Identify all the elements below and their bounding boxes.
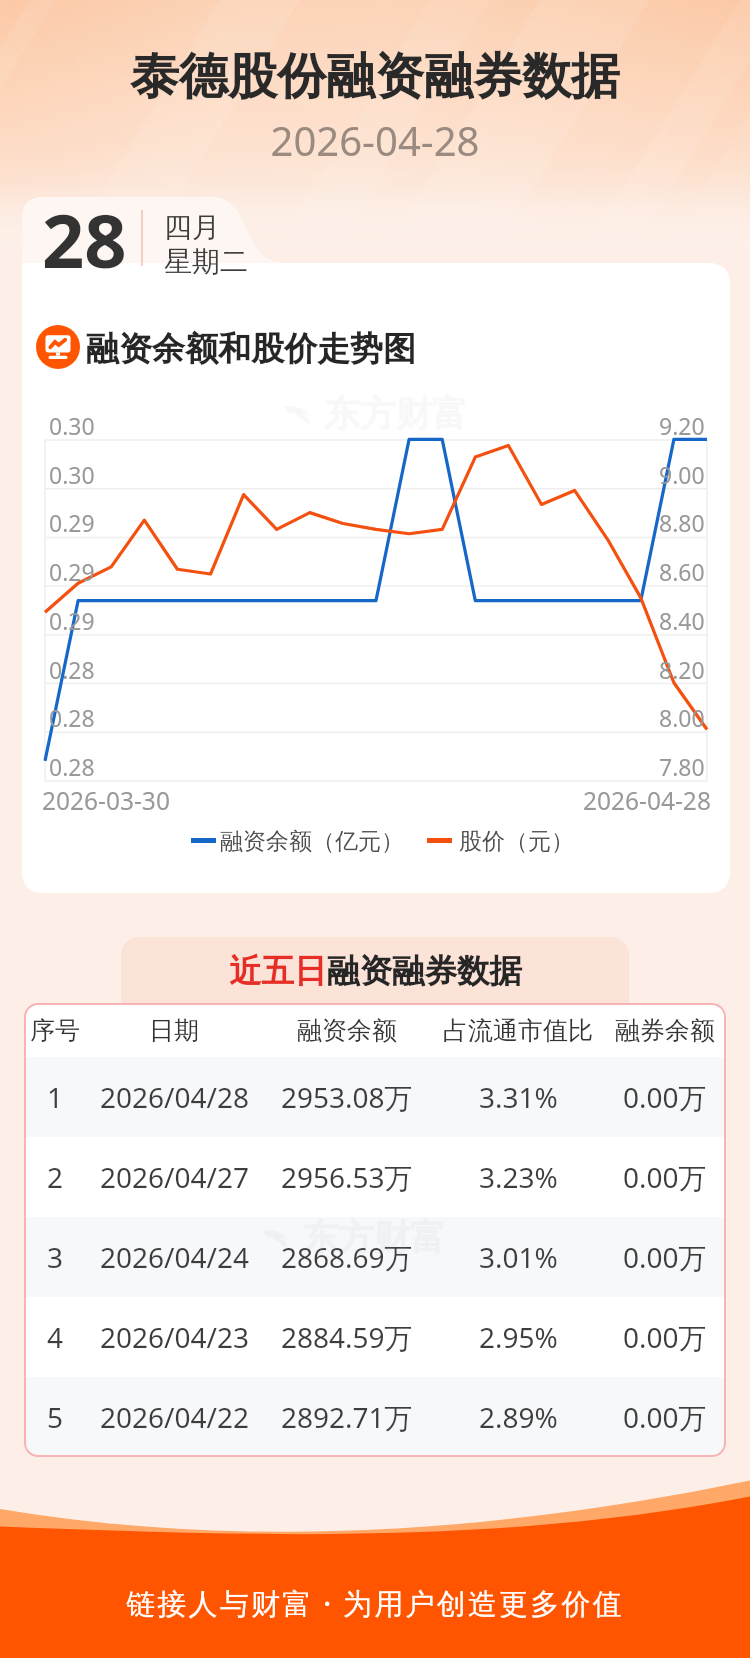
staticText: 2026-04-28 bbox=[583, 784, 711, 817]
button[interactable]: 4 bbox=[24, 1297, 726, 1377]
staticText: 2026/04/24 bbox=[100, 1238, 249, 1276]
staticText: 东方财富 bbox=[324, 391, 468, 436]
staticText: 3.31% bbox=[479, 1078, 558, 1116]
staticText: 28 bbox=[42, 189, 127, 290]
staticText: 融资余额（亿元） bbox=[220, 827, 404, 856]
staticText: 0.28 bbox=[49, 751, 95, 782]
staticText: 2884.59万 bbox=[281, 1318, 413, 1356]
staticText: 序号 bbox=[30, 1015, 80, 1046]
staticText: 融资余额 bbox=[297, 1015, 397, 1046]
staticText: 链接人与财富 · 为用户创造更多价值 bbox=[0, 1583, 750, 1623]
staticText: 9.20 bbox=[659, 410, 705, 441]
staticText: 0.30 bbox=[49, 410, 95, 441]
staticText: 融资余额和股价走势图 bbox=[86, 328, 416, 370]
staticText: 2.89% bbox=[479, 1398, 558, 1436]
staticText: 0.28 bbox=[49, 654, 95, 685]
staticText: 0.29 bbox=[49, 556, 95, 587]
staticText: 3.23% bbox=[479, 1158, 558, 1196]
staticText: 融券余额 bbox=[615, 1015, 715, 1046]
button[interactable]: 3 bbox=[24, 1217, 726, 1297]
staticText: 2026/04/22 bbox=[100, 1398, 249, 1436]
staticText: 泰德股份融资融券数据 bbox=[0, 46, 750, 108]
staticText: 四月 bbox=[164, 210, 220, 245]
staticText: 0.28 bbox=[49, 702, 95, 733]
staticText: 2956.53万 bbox=[281, 1158, 413, 1196]
button[interactable]: 1 bbox=[24, 1057, 726, 1137]
other: 走势图 bbox=[36, 325, 80, 369]
staticText: 8.00 bbox=[659, 702, 705, 733]
staticText: 0.00万 bbox=[623, 1158, 707, 1196]
staticText: 8.20 bbox=[659, 654, 705, 685]
staticText: 2953.08万 bbox=[281, 1078, 413, 1116]
staticText: 2026-03-30 bbox=[42, 784, 170, 817]
staticText: 2026/04/27 bbox=[100, 1158, 249, 1196]
staticText: 星期二 bbox=[164, 244, 248, 279]
staticText: 0.30 bbox=[49, 459, 95, 490]
staticText: 2868.69万 bbox=[281, 1238, 413, 1276]
staticText: 2 bbox=[47, 1158, 64, 1196]
staticText: 8.40 bbox=[659, 605, 705, 636]
staticText: 融资融券数据 bbox=[327, 951, 522, 992]
staticText: 3 bbox=[47, 1238, 64, 1276]
staticText: 9.00 bbox=[659, 459, 705, 490]
staticText: 7.80 bbox=[659, 751, 705, 782]
button[interactable]: 2 bbox=[24, 1137, 726, 1217]
staticText: 0.29 bbox=[49, 605, 95, 636]
staticText: 股价（元） bbox=[459, 827, 574, 856]
staticText: 1 bbox=[47, 1078, 64, 1116]
staticText: 2026/04/23 bbox=[100, 1318, 249, 1356]
staticText: 日期 bbox=[149, 1015, 199, 1046]
staticText: 8.80 bbox=[659, 507, 705, 538]
staticText: 4 bbox=[47, 1318, 64, 1356]
staticText: 东方财富 bbox=[302, 1215, 446, 1260]
staticText: 2892.71万 bbox=[281, 1398, 413, 1436]
staticText: 0.00万 bbox=[623, 1238, 707, 1276]
staticText: 0.29 bbox=[49, 507, 95, 538]
staticText: 占流通市值比 bbox=[443, 1015, 593, 1046]
staticText: 3.01% bbox=[479, 1238, 558, 1276]
staticText: 2026/04/28 bbox=[100, 1078, 249, 1116]
staticText: 2026-04-28 bbox=[0, 113, 750, 167]
staticText: 0.00万 bbox=[623, 1398, 707, 1436]
staticText: 0.00万 bbox=[623, 1078, 707, 1116]
button[interactable]: 5 bbox=[24, 1377, 726, 1457]
staticText: 2.95% bbox=[479, 1318, 558, 1356]
staticText: 8.60 bbox=[659, 556, 705, 587]
button[interactable]: 走势图 bbox=[36, 325, 416, 369]
staticText: 5 bbox=[47, 1398, 64, 1436]
staticText: 近五日 bbox=[229, 951, 327, 992]
staticText: 0.00万 bbox=[623, 1318, 707, 1356]
